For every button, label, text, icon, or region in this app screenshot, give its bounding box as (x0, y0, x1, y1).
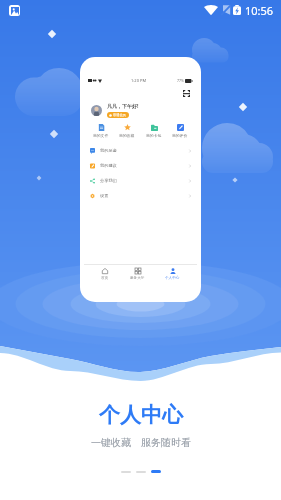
staticText: 1:20 PM (131, 78, 147, 83)
button[interactable]: 设置 (84, 188, 197, 203)
staticText: 我的评价 (172, 133, 188, 138)
button[interactable]: 首页 (98, 267, 112, 282)
button[interactable]: 凡凡，下午好! (91, 101, 197, 119)
staticText: 我的建议 (100, 163, 117, 168)
staticText: 一键收藏 服务随时看 (91, 435, 191, 449)
staticText: 分享我们 (100, 178, 117, 183)
staticText: 设置 (100, 193, 109, 198)
button[interactable]: 我的文件 (91, 123, 111, 139)
button[interactable]: 我的评价 (170, 123, 190, 139)
staticText: 我的文件 (93, 133, 109, 138)
staticText: 个人中心 (99, 402, 183, 428)
button[interactable]: 我的卡包 (144, 123, 164, 139)
button[interactable]: 我的足迹 (84, 143, 197, 158)
staticText: 首页 (101, 276, 109, 281)
staticText: 10:56 (245, 3, 274, 18)
staticText: 个人中心 (165, 276, 180, 281)
button[interactable]: 我的收藏 (117, 123, 137, 139)
staticText: 服务大厅 (130, 276, 145, 281)
button[interactable]: 我的建议 (84, 158, 197, 173)
button[interactable]: 服务大厅 (127, 267, 148, 282)
staticText: 普通会员 (113, 113, 126, 117)
staticText: 我的卡包 (146, 133, 162, 138)
staticText: 我的足迹 (100, 148, 117, 153)
staticText: 我的收藏 (119, 133, 135, 138)
button[interactable]: 个人中心 (162, 267, 183, 282)
button[interactable]: 分享我们 (84, 173, 197, 188)
staticText: 77% (177, 78, 184, 83)
staticText: 凡凡，下午好! (107, 103, 139, 110)
button[interactable]: Scan QR code (182, 89, 191, 98)
button[interactable]: Screenshot (9, 5, 20, 16)
